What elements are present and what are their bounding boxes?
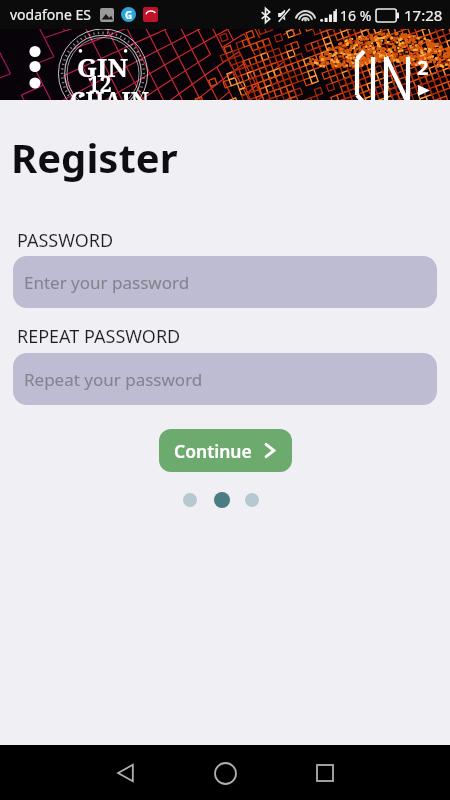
staticText: CHAIN bbox=[70, 84, 149, 100]
staticText: 16 % bbox=[340, 6, 372, 25]
staticText: 12 bbox=[88, 70, 112, 99]
staticText: Continue bbox=[174, 439, 252, 463]
staticText: G bbox=[125, 8, 133, 22]
staticText: PASSWORD bbox=[17, 228, 114, 253]
staticText: 2 bbox=[417, 54, 429, 81]
button[interactable]: Repeat your password bbox=[13, 353, 437, 405]
button[interactable]: Recents bbox=[301, 749, 349, 797]
staticText: REPEAT PASSWORD bbox=[17, 324, 181, 349]
button[interactable]: Back bbox=[102, 749, 150, 797]
staticText: GIN bbox=[77, 49, 128, 84]
staticText: Register bbox=[11, 130, 178, 184]
button[interactable]: Home bbox=[201, 749, 249, 797]
button[interactable]: Enter your password bbox=[13, 256, 437, 308]
staticText: 17:28 bbox=[404, 5, 443, 25]
button[interactable]: Continue bbox=[159, 429, 292, 472]
staticText: vodafone ES bbox=[10, 5, 91, 24]
staticText: Repeat your password bbox=[24, 368, 203, 391]
staticText: Enter your password bbox=[24, 271, 190, 294]
